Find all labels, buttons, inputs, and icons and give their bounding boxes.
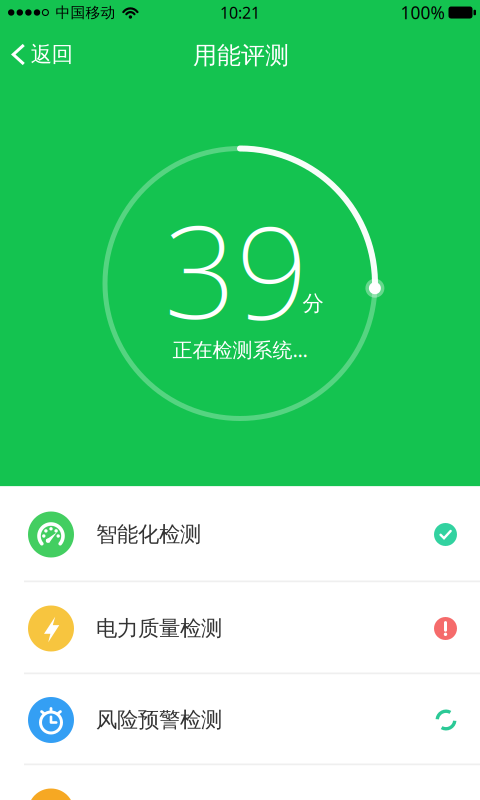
staticText: 100% <box>400 1 444 24</box>
button[interactable]: 返回 <box>11 32 73 76</box>
staticText: 39 <box>164 185 308 354</box>
button[interactable]: 安全用电检测 <box>0 765 480 800</box>
staticText: 返回 <box>31 41 73 68</box>
staticText: 用能评测 <box>193 41 289 70</box>
staticText: 中国移动 <box>55 3 115 21</box>
staticText: 分 <box>302 290 323 317</box>
button[interactable]: 风险预警检测 <box>0 674 480 765</box>
staticText: 风险预警检测 <box>96 707 222 733</box>
button[interactable]: 智能化检测 <box>0 486 480 582</box>
button[interactable]: 电力质量检测 <box>0 582 480 674</box>
staticText: 正在检测系统... <box>172 336 307 363</box>
staticText: 10:21 <box>220 2 260 23</box>
staticText: 电力质量检测 <box>96 615 222 642</box>
staticText: 智能化检测 <box>96 521 201 548</box>
